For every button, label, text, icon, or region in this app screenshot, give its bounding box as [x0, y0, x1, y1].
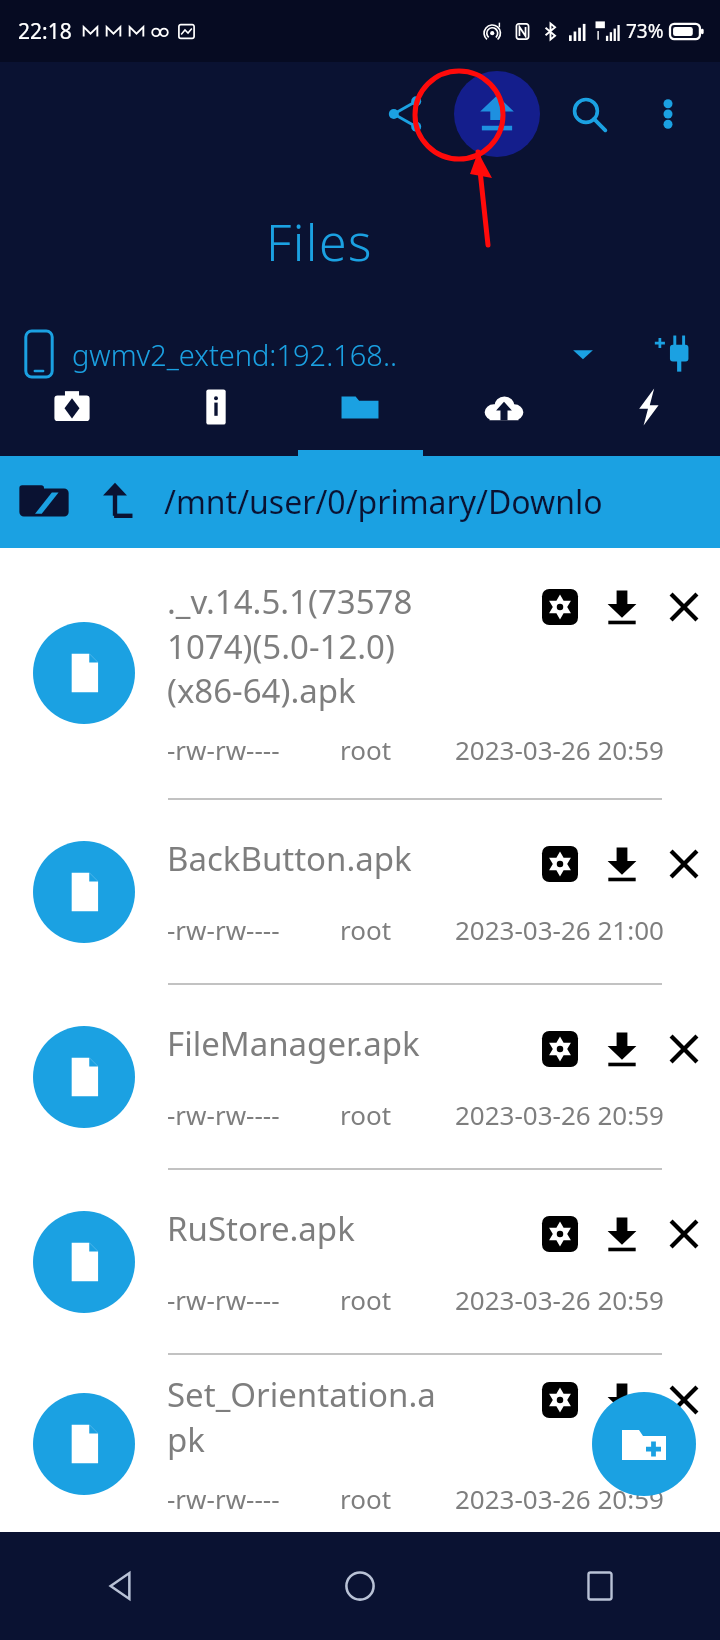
button[interactable]: Download [594, 836, 650, 892]
button[interactable]: New folder [592, 1392, 696, 1496]
button[interactable]: Install [532, 1206, 588, 1262]
staticText: root [340, 1097, 392, 1132]
staticText: /mnt/user/0/primary/Downlo [164, 480, 603, 524]
button[interactable]: Install [532, 1021, 588, 1077]
staticText: -rw-rw---- [167, 1282, 280, 1317]
staticText: -rw-rw---- [167, 1481, 280, 1516]
button[interactable]: Set_Orientation.a pk [0, 1355, 720, 1532]
button[interactable]: Delete [656, 1206, 712, 1262]
staticText: 22:18 [18, 17, 72, 46]
staticText: -rw-rw---- [167, 912, 280, 947]
button[interactable]: Back [0, 1532, 240, 1640]
staticText: FileManager.apk [167, 1021, 524, 1066]
staticText: root [340, 1282, 392, 1317]
button[interactable]: Home [240, 1532, 480, 1640]
staticText: Set_Orientation.a pk [167, 1372, 524, 1461]
button[interactable]: Download [594, 579, 650, 635]
staticText: -rw-rw---- [167, 1097, 280, 1132]
staticText: -rw-rw---- [167, 732, 280, 767]
button[interactable]: Download [594, 1206, 650, 1262]
button[interactable]: Delete [656, 1021, 712, 1077]
button[interactable]: FileManager.apk [0, 985, 720, 1168]
staticText: 2023-03-26 20:59 [455, 1481, 664, 1516]
button[interactable]: Download [594, 1021, 650, 1077]
button[interactable]: Install [532, 1372, 588, 1428]
button[interactable]: More options [632, 78, 704, 150]
button[interactable]: BackButton.apk [0, 800, 720, 983]
button[interactable]: Delete [656, 579, 712, 635]
button[interactable]: Device info [144, 358, 288, 456]
staticText: root [340, 732, 392, 767]
button[interactable]: Files [288, 358, 432, 456]
button[interactable]: Delete [656, 1372, 712, 1428]
staticText: root [340, 912, 392, 947]
button[interactable]: Quick actions [576, 358, 720, 456]
staticText: BackButton.apk [167, 836, 524, 881]
button[interactable]: Download [594, 1372, 650, 1428]
staticText: ._v.14.5.1(73578 1074)(5.0-12.0) (x86-64… [167, 579, 524, 712]
staticText: gwmv2_extend:192.168.. [72, 335, 398, 374]
button[interactable]: gwmv2_extend:192.168.. [0, 312, 636, 396]
staticText: Files [266, 208, 373, 276]
button[interactable]: Share [366, 75, 444, 153]
button[interactable]: Install [532, 836, 588, 892]
staticText: 73% [626, 18, 664, 44]
staticText: RuStore.apk [167, 1206, 524, 1251]
staticText: 2023-03-26 20:59 [455, 732, 664, 767]
staticText: 2023-03-26 21:00 [455, 912, 664, 947]
button[interactable]: ._v.14.5.1(73578 1074)(5.0-12.0) (x86-64… [0, 548, 720, 798]
button[interactable]: Recent apps [480, 1532, 720, 1640]
button[interactable]: Upload [432, 358, 576, 456]
staticText: root [340, 1481, 392, 1516]
button[interactable]: Upload [454, 71, 540, 157]
staticText: 2023-03-26 20:59 [455, 1097, 664, 1132]
button[interactable]: Delete [656, 836, 712, 892]
staticText: 2023-03-26 20:59 [455, 1282, 664, 1317]
button[interactable]: RuStore.apk [0, 1170, 720, 1353]
button[interactable]: /mnt/user/0/primary/Downlo [0, 456, 720, 548]
button[interactable]: Screenshot [0, 358, 144, 456]
button[interactable]: Add connection [636, 315, 714, 393]
button[interactable]: Install [532, 579, 588, 635]
button[interactable]: Search [550, 75, 628, 153]
